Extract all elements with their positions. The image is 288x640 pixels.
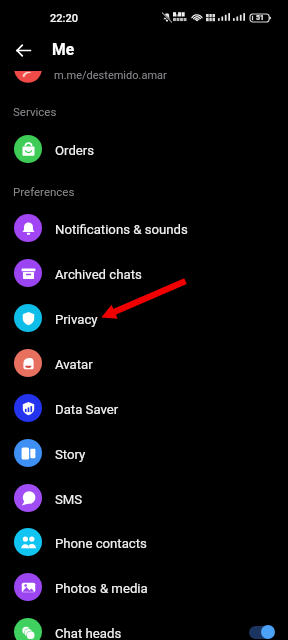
staticText: Avatar — [55, 357, 93, 372]
staticText: Chat heads — [55, 626, 122, 640]
button[interactable]: Avatar — [0, 340, 288, 385]
staticText: Orders — [55, 143, 95, 158]
button[interactable]: Notifications & sounds — [0, 205, 288, 250]
button[interactable]: Privacy — [0, 295, 288, 340]
staticText: Preferences — [13, 185, 75, 198]
button[interactable]: m.me/destemido.amar — [0, 71, 288, 89]
button[interactable]: Photos & media — [0, 564, 288, 609]
button[interactable]: Phone contacts — [0, 519, 288, 564]
staticText: Archived chats — [55, 267, 142, 282]
staticText: Story — [55, 447, 86, 462]
button[interactable]: Data Saver — [0, 385, 288, 430]
button[interactable]: Story — [0, 430, 288, 475]
button[interactable]: Archived chats — [0, 250, 288, 295]
staticText: 22:20 — [50, 12, 78, 25]
staticText: Data Saver — [55, 402, 119, 417]
button[interactable]: Chat heads — [0, 609, 288, 640]
staticText: Privacy — [55, 312, 98, 327]
staticText: Phone contacts — [55, 536, 147, 551]
button[interactable]: Orders — [0, 126, 288, 171]
staticText: Me — [52, 41, 75, 59]
staticText: SMS — [55, 492, 83, 507]
staticText: m.me/destemido.amar — [54, 69, 167, 82]
staticText: Services — [13, 105, 57, 118]
staticText: 51 — [256, 14, 265, 22]
staticText: Photos & media — [55, 581, 148, 596]
button[interactable]: Back — [11, 38, 35, 62]
staticText: Notifications & sounds — [55, 222, 188, 237]
button[interactable]: SMS — [0, 475, 288, 520]
